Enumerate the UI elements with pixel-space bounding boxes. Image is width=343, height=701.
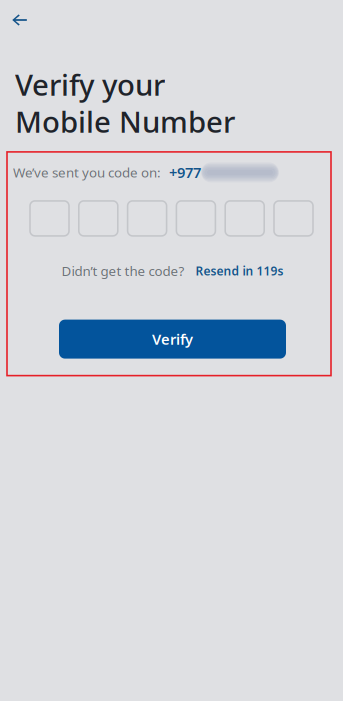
staticText: We’ve sent you code on:: [13, 164, 161, 181]
staticText: Verify your: [15, 65, 165, 104]
button[interactable]: Resend in 119s: [195, 263, 283, 279]
button[interactable]: Back: [0, 0, 43, 40]
staticText: +977: [169, 163, 201, 182]
button[interactable]: Verify: [59, 320, 286, 359]
staticText: Didn’t get the code?: [61, 262, 184, 280]
staticText: Mobile Number: [15, 102, 235, 141]
staticText: Verify: [152, 329, 193, 349]
staticText: Resend in 119s: [195, 263, 283, 279]
